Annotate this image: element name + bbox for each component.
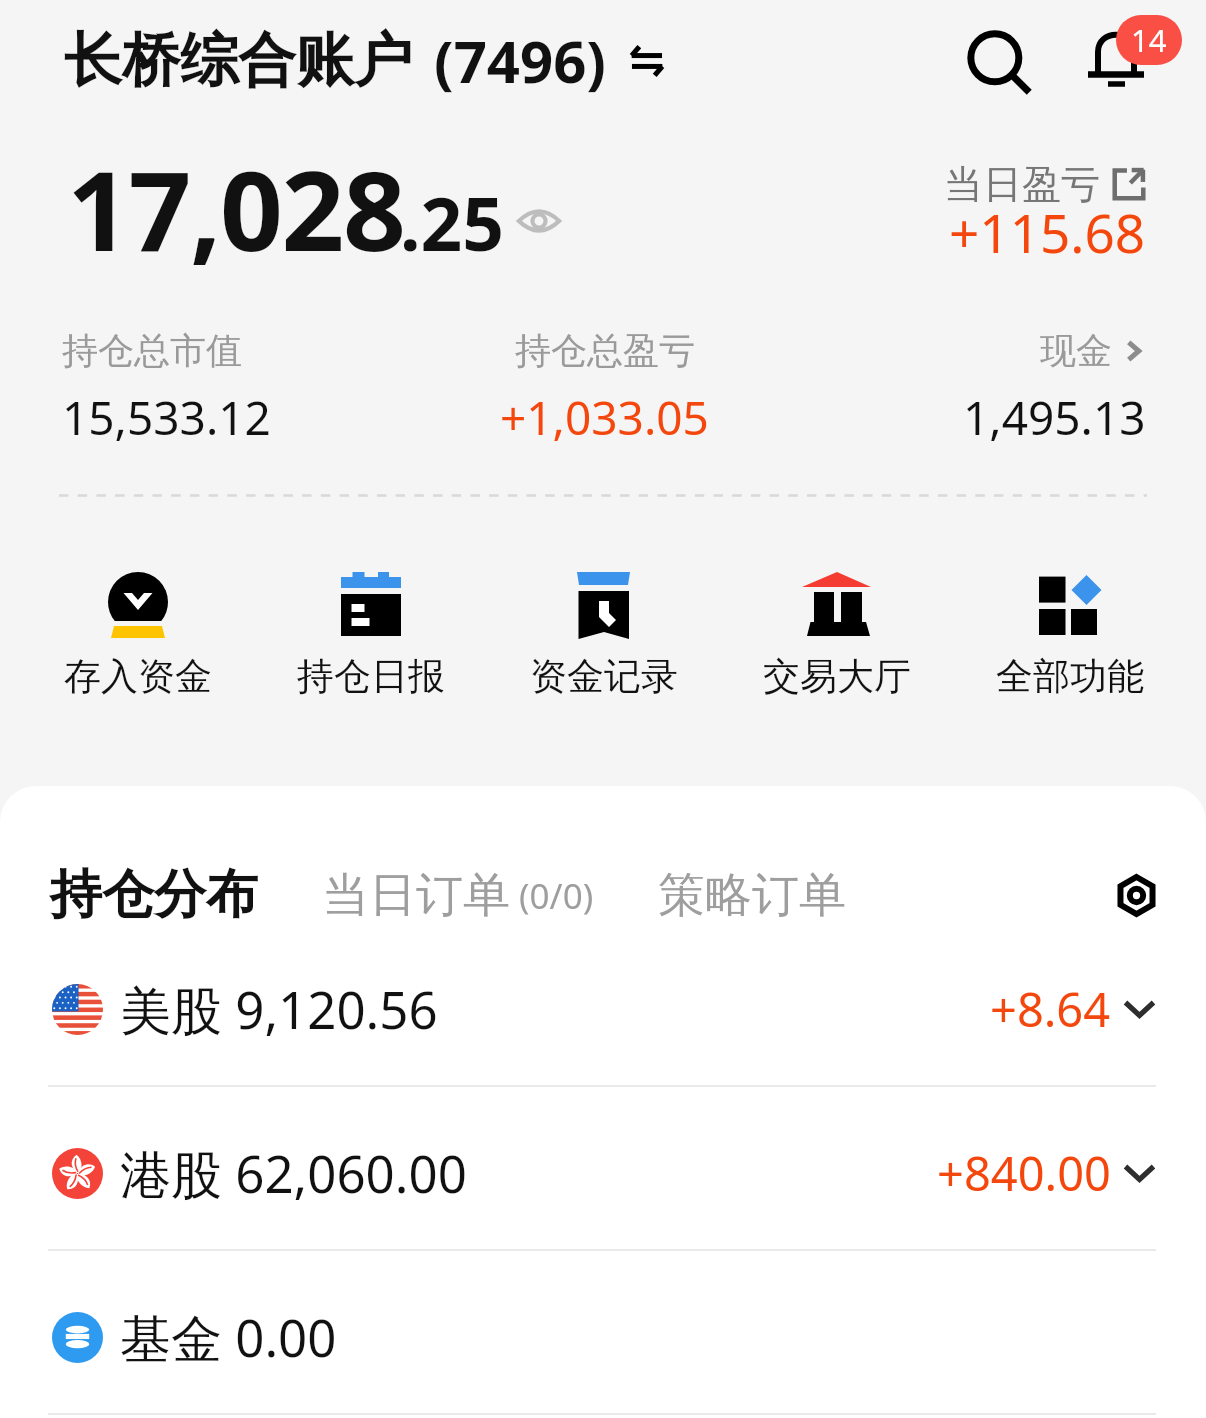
staticText: 14 <box>1131 19 1167 61</box>
button[interactable]: 美股 9,120.56 <box>0 923 1206 1085</box>
staticText: 存入资金 <box>64 653 212 700</box>
button[interactable]: Settings <box>1101 860 1171 930</box>
staticText: 资金记录 <box>530 653 678 700</box>
button[interactable]: Search <box>944 7 1044 107</box>
staticText: +1,033.05 <box>500 386 709 449</box>
staticText: 港股 62,060.00 <box>120 1138 467 1208</box>
staticText: 全部功能 <box>996 653 1144 700</box>
button[interactable]: 持仓分布 <box>50 862 258 928</box>
button[interactable]: 现金 <box>1040 328 1146 373</box>
staticText: (7496) <box>434 21 607 99</box>
staticText: 当日盈亏 <box>944 160 1100 209</box>
staticText: +840.00 <box>937 1141 1111 1205</box>
staticText: 现金 <box>1040 328 1112 373</box>
button[interactable]: 长桥综合账户 <box>64 21 663 99</box>
staticText: 长桥综合账户 <box>64 24 412 97</box>
button[interactable]: 港股 62,060.00 <box>0 1087 1206 1249</box>
button[interactable]: 当日盈亏 <box>944 160 1146 209</box>
staticText: (0/0) <box>510 872 594 920</box>
button[interactable]: 存入资金 <box>21 572 254 700</box>
staticText: 17,028 <box>67 133 405 283</box>
button[interactable]: 基金 0.00 <box>0 1251 1206 1413</box>
button[interactable]: 策略订单 <box>658 866 846 925</box>
button[interactable]: 资金记录 <box>487 572 720 700</box>
staticText: +8.64 <box>990 977 1111 1041</box>
staticText: 持仓总市值 <box>62 328 242 373</box>
button[interactable]: 交易大厅 <box>720 572 953 700</box>
staticText: 持仓日报 <box>297 653 445 700</box>
staticText: +115.68 <box>949 196 1146 268</box>
button[interactable]: Toggle balance visibility <box>513 200 565 242</box>
staticText: 当日订单 <box>322 866 510 925</box>
staticText: 美股 9,120.56 <box>120 974 438 1044</box>
button[interactable]: 持仓日报 <box>254 572 487 700</box>
staticText: 持仓总盈亏 <box>515 328 695 373</box>
staticText: .25 <box>400 173 505 272</box>
staticText: 1,495.13 <box>963 386 1146 449</box>
button[interactable]: Notifications <box>1060 0 1180 120</box>
staticText: 15,533.12 <box>62 386 271 449</box>
staticText: 交易大厅 <box>763 653 911 700</box>
staticText: 基金 0.00 <box>120 1302 337 1372</box>
button[interactable]: 当日订单 <box>322 866 594 925</box>
button[interactable]: 全部功能 <box>953 572 1186 700</box>
